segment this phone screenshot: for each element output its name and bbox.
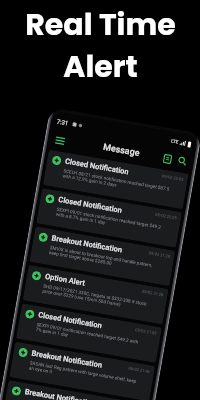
button[interactable]: Saved [160,151,175,166]
button[interactable]: Breakout Notification [9,342,155,400]
staticText: with a 12.9% gain in 2 days [62,173,117,188]
staticText: 7% gain in 1 day [35,327,69,337]
staticText: Breakout Notification [24,387,97,400]
staticText: Breakout Notification [51,233,123,254]
staticText: 09/02 21:05 [135,327,157,336]
button[interactable]: Closed Notification [16,303,162,363]
staticText: Message [102,142,140,159]
staticText: Closed Notification [58,195,123,215]
button[interactable]: Breakout Notification [29,226,175,286]
staticText: $MVIX is about to breakout top and handl… [50,245,153,268]
staticText: SEXPI 09/01 notification reached target … [36,322,139,345]
staticText: Closed Notification [64,156,130,176]
staticText: keep first target above $285.00 [49,250,113,266]
staticText: Closed Notification [38,310,103,330]
staticText: LTE [171,138,179,145]
staticText: Alert [63,46,138,88]
staticText: Option Alert [44,272,86,288]
staticText: 06/02 21:46 [128,365,151,374]
staticText: SHD 09/17/2021 330C, targets at $332-338… [43,284,147,307]
staticText: price over $329 (use 15min 50d frame) [42,288,122,307]
staticText: 09/02 21:28 [148,250,171,259]
staticText: 7:31 [56,117,69,126]
staticText: 09/02 22:05 [162,173,184,182]
staticText: an eye on it [29,365,53,374]
staticText: Real Time [25,4,176,46]
button[interactable]: Breakout Notification [2,380,149,400]
button[interactable]: Option Alert [23,265,169,325]
button[interactable]: Closed Notification [43,149,189,209]
staticText: 09/02 22:05 [155,212,177,220]
button[interactable]: Menu [52,132,68,148]
staticText: SEXPI 09/01 stock notification reached t… [56,207,162,230]
staticText: Breakout Notification [31,349,103,370]
staticText: SCELH 08/21 stock notification reached t… [63,168,170,192]
staticText: with a 8.7% gain in 1 day [55,212,106,225]
staticText: $ASAN last Reg pattern with large volume… [29,360,138,384]
button[interactable]: Search [175,154,190,169]
button[interactable]: Closed Notification [36,188,182,248]
staticText: 09/02 21:28 [141,289,164,297]
